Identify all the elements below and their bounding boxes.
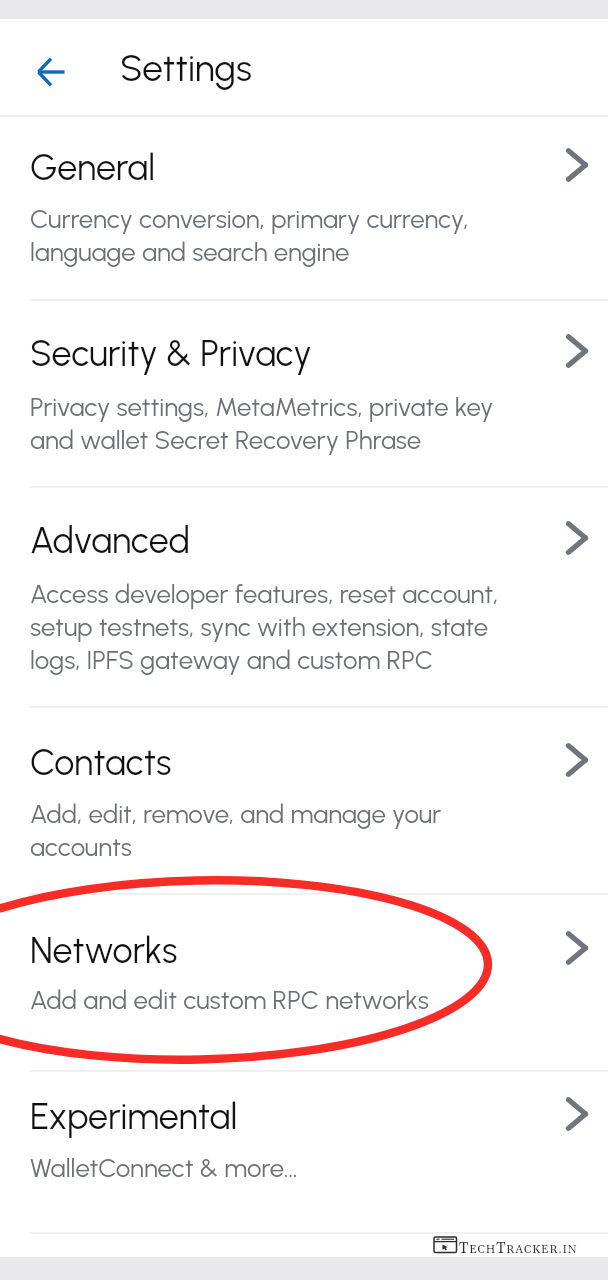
staticText: Advanced <box>30 519 191 562</box>
button[interactable]: Contacts <box>0 708 608 895</box>
staticText: Currency conversion, primary currency, l… <box>30 203 469 267</box>
staticText: Networks <box>30 929 178 972</box>
button[interactable]: General <box>0 117 608 301</box>
staticText: Privacy settings, MetaMetrics, private k… <box>30 391 494 455</box>
staticText: Contacts <box>30 741 172 784</box>
staticText: Access developer features, reset account… <box>30 578 499 675</box>
staticText: TECHTRACKER.IN <box>459 1239 578 1258</box>
button[interactable]: Advanced <box>0 488 608 708</box>
staticText: Add and edit custom RPC networks <box>30 984 429 1015</box>
staticText: General <box>30 146 156 189</box>
staticText: Security & Privacy <box>30 332 312 375</box>
button[interactable]: Experimental <box>0 1072 608 1234</box>
button[interactable]: Security & Privacy <box>0 301 608 488</box>
staticText: WalletConnect & more... <box>30 1152 298 1183</box>
staticText: Add, edit, remove, and manage your accou… <box>30 798 442 862</box>
button[interactable]: Back <box>24 45 78 99</box>
staticText: Settings <box>120 46 252 90</box>
button[interactable]: Networks <box>0 895 608 1072</box>
staticText: Experimental <box>30 1095 238 1138</box>
